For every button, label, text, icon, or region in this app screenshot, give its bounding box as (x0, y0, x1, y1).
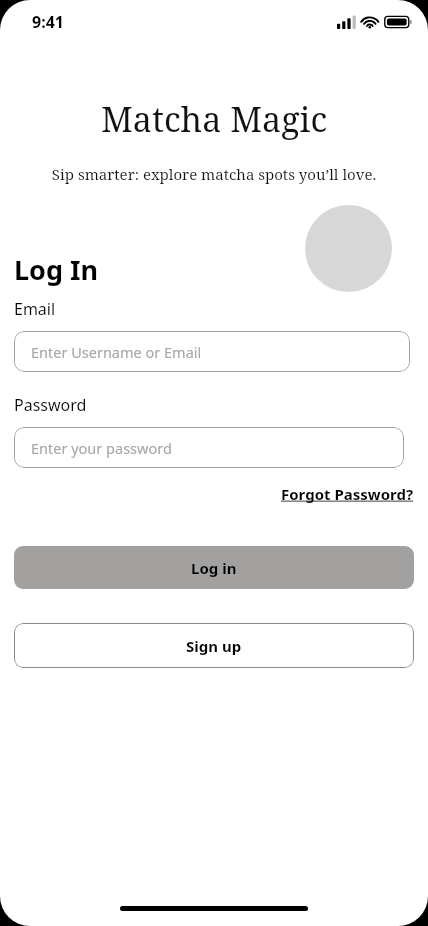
staticText: Sip smarter: explore matcha spots you’ll… (0, 164, 428, 184)
staticText: Enter your password (31, 438, 172, 458)
button[interactable]: Email input (14, 331, 410, 372)
staticText: Email (14, 298, 56, 320)
staticText: Log in (191, 558, 237, 578)
button[interactable]: Sign up (14, 623, 414, 668)
staticText: Sign up (186, 636, 242, 656)
button[interactable]: Profile photo (305, 205, 392, 292)
staticText: Password (14, 394, 87, 416)
button[interactable]: Forgot Password? (281, 484, 414, 504)
staticText: 9:41 (32, 11, 64, 33)
button[interactable]: Password input (14, 427, 404, 468)
button[interactable]: Log in (14, 546, 414, 589)
staticText: Log In (14, 251, 99, 288)
staticText: Enter Username or Email (31, 342, 202, 362)
staticText: Matcha Magic (0, 96, 428, 142)
staticText: Forgot Password? (281, 484, 414, 504)
